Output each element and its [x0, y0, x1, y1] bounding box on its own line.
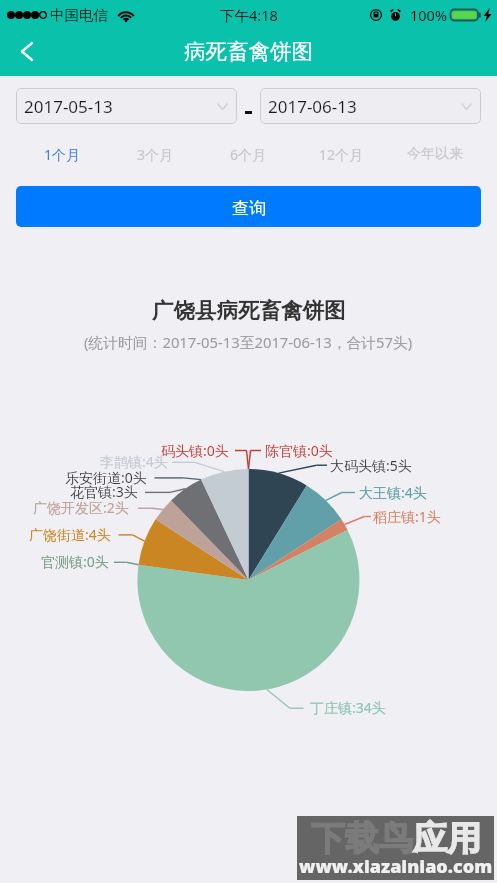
staticText: 李鹊镇:4头 — [100, 452, 168, 471]
staticText: 应用 — [413, 817, 481, 860]
staticText: 花官镇:3头 — [70, 482, 138, 501]
staticText: www.xiazainiao.com — [299, 854, 493, 879]
button[interactable]: 2017-06-13 — [260, 88, 481, 124]
staticText: 查询 — [232, 198, 266, 219]
staticText: 1个月 — [44, 145, 81, 164]
staticText: 乐安街道:0头 — [65, 468, 147, 487]
staticText: 下载鸟 — [311, 817, 413, 860]
staticText: 病死畜禽饼图 — [184, 38, 313, 65]
button[interactable]: 6个月 — [202, 139, 295, 169]
button[interactable]: 3个月 — [109, 139, 202, 169]
staticText: 下午4:18 — [220, 5, 278, 25]
staticText: 今年以来 — [407, 145, 463, 163]
staticText: 陈官镇:0头 — [265, 441, 333, 460]
staticText: 大王镇:4头 — [359, 483, 427, 502]
button[interactable]: 返回 — [7, 31, 47, 71]
staticText: 中国电信 — [50, 6, 108, 24]
staticText: 100% — [410, 5, 447, 25]
staticText: 3个月 — [137, 145, 174, 164]
button[interactable]: 查询 — [16, 186, 481, 227]
staticText: 码头镇:0头 — [161, 441, 229, 460]
staticText: 丁庄镇:34头 — [310, 698, 386, 717]
staticText: 12个月 — [319, 145, 364, 164]
staticText: 官测镇:0头 — [41, 552, 109, 571]
staticText: 2017-05-13 — [24, 95, 113, 118]
staticText: 2017-06-13 — [268, 95, 357, 118]
staticText: 广饶开发区:2头 — [33, 498, 129, 517]
button[interactable]: 2017-05-13 — [16, 88, 237, 124]
button[interactable]: 今年以来 — [388, 139, 481, 169]
staticText: 6个月 — [230, 145, 267, 164]
staticText: (统计时间：2017-05-13至2017-06-13，合计57头) — [84, 332, 413, 352]
staticText: 广饶县病死畜禽饼图 — [152, 297, 346, 324]
staticText: 广饶街道:4头 — [29, 525, 111, 544]
button[interactable]: 12个月 — [295, 139, 388, 169]
staticText: 大码头镇:5头 — [330, 456, 412, 475]
button[interactable]: 1个月 — [16, 139, 109, 169]
staticText: 稻庄镇:1头 — [373, 507, 441, 526]
